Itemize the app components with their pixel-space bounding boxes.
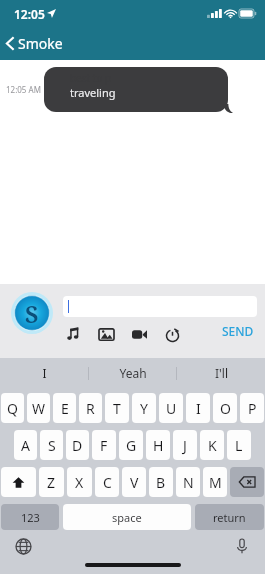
staticText: W xyxy=(32,399,46,418)
staticText: Yeah xyxy=(119,365,147,381)
staticText: R xyxy=(86,399,95,418)
staticText: 123 xyxy=(21,510,40,525)
staticText: X xyxy=(75,473,84,492)
staticText: I xyxy=(42,365,47,381)
staticText: C xyxy=(103,473,112,492)
staticText: D xyxy=(72,436,83,455)
staticText: T xyxy=(113,399,121,418)
staticText: J xyxy=(183,436,187,455)
button[interactable]: Music xyxy=(63,324,83,344)
button[interactable]: K xyxy=(200,430,224,460)
button[interactable]: X xyxy=(67,467,92,497)
staticText: Q xyxy=(7,399,18,418)
button[interactable]: E xyxy=(53,393,76,423)
button[interactable]: A xyxy=(14,430,37,460)
staticText: SEND xyxy=(222,323,254,339)
button[interactable]: F xyxy=(92,430,116,460)
staticText: Smoke xyxy=(18,34,63,53)
button[interactable]: H xyxy=(146,430,170,460)
staticText: B xyxy=(156,473,166,492)
staticText: return xyxy=(213,510,246,525)
button[interactable]: Smoke xyxy=(0,30,71,57)
button[interactable]: M xyxy=(203,467,227,497)
button[interactable]: O xyxy=(213,393,237,423)
button[interactable]: P xyxy=(240,393,264,423)
staticText: traveling xyxy=(70,85,116,100)
button[interactable]: Q xyxy=(1,393,24,423)
staticText: M xyxy=(209,473,222,492)
staticText: Z xyxy=(47,473,56,492)
button[interactable]: L xyxy=(227,430,251,460)
button[interactable]: I xyxy=(0,358,89,388)
staticText: S xyxy=(48,436,56,455)
button[interactable]: Dictation xyxy=(232,536,252,556)
button[interactable]: Backspace xyxy=(230,467,264,497)
staticText: Y xyxy=(140,399,148,418)
staticText: N xyxy=(183,473,194,492)
button[interactable]: B xyxy=(149,467,173,497)
button[interactable]: R xyxy=(79,393,102,423)
button[interactable]: W xyxy=(27,393,50,423)
staticText: 12:05 xyxy=(14,6,45,22)
button[interactable]: space xyxy=(63,504,191,530)
staticText: K xyxy=(208,436,217,455)
button[interactable]: U xyxy=(159,393,183,423)
button[interactable]: G xyxy=(119,430,143,460)
button[interactable]: Photos xyxy=(96,324,116,344)
staticText: E xyxy=(61,399,69,418)
staticText: 12:05 AM xyxy=(6,84,41,95)
button[interactable] xyxy=(63,296,257,317)
button[interactable]: I'll xyxy=(177,358,265,388)
staticText: A xyxy=(21,436,30,455)
button[interactable]: SEND xyxy=(219,320,257,342)
staticText: O xyxy=(220,399,231,418)
button[interactable]: Z xyxy=(39,467,64,497)
button[interactable]: I xyxy=(186,393,210,423)
button[interactable]: Y xyxy=(132,393,156,423)
button[interactable]: V xyxy=(122,467,146,497)
staticText: I xyxy=(196,399,201,418)
button[interactable]: App xyxy=(11,292,53,334)
button[interactable]: 123 xyxy=(1,504,59,530)
staticText: U xyxy=(166,399,177,418)
button[interactable]: J xyxy=(173,430,197,460)
button[interactable]: C xyxy=(95,467,119,497)
staticText: H xyxy=(153,436,164,455)
staticText: G xyxy=(126,436,137,455)
button[interactable]: Video xyxy=(129,324,149,344)
staticText: L xyxy=(235,436,243,455)
staticText: P xyxy=(248,399,257,418)
button[interactable]: S xyxy=(40,430,63,460)
button[interactable]: D xyxy=(66,430,89,460)
staticText: F xyxy=(100,436,108,455)
button[interactable]: return xyxy=(195,504,264,530)
button[interactable]: Shift xyxy=(1,467,36,497)
button[interactable]: N xyxy=(176,467,200,497)
button[interactable]: Timer xyxy=(162,324,182,344)
button[interactable]: best to p xyxy=(44,67,228,112)
staticText: V xyxy=(130,473,139,492)
button[interactable]: Yeah xyxy=(89,358,177,388)
staticText: space xyxy=(112,510,142,525)
button[interactable]: T xyxy=(105,393,129,423)
staticText: S xyxy=(25,298,39,329)
button[interactable]: Switch keyboard xyxy=(13,536,33,556)
staticText: I'll xyxy=(215,365,228,381)
